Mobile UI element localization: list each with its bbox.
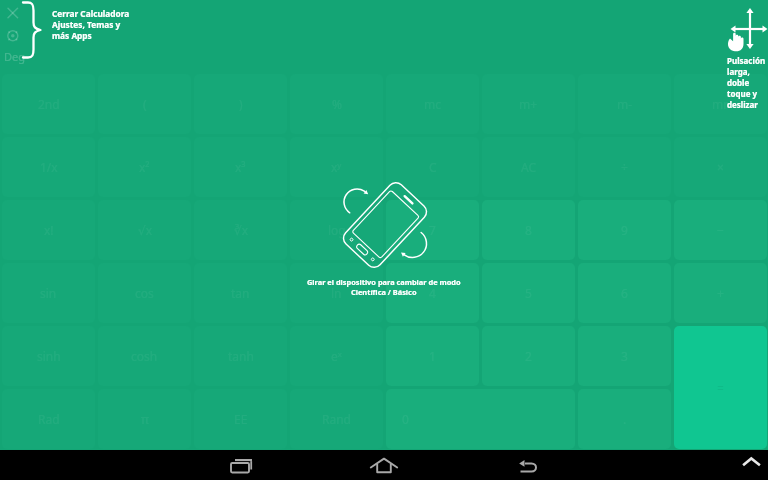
staticText: ( (143, 96, 147, 112)
staticText: ln (331, 285, 342, 301)
staticText: √x (138, 222, 152, 238)
staticText: xʸ (331, 159, 342, 175)
staticText: Pulsación (727, 55, 766, 66)
button[interactable]: C (386, 137, 479, 197)
staticText: log (328, 222, 346, 238)
staticText: deslizar (727, 99, 758, 110)
button[interactable]: Home (356, 450, 412, 480)
staticText: mr (712, 96, 729, 112)
staticText: Deg (4, 49, 25, 64)
staticText: eˣ (331, 348, 342, 364)
staticText: larga, (727, 66, 750, 77)
staticText: × (717, 159, 724, 175)
staticText: 1/x (40, 159, 58, 175)
staticText: ∛x (234, 222, 248, 238)
staticText: sinh (37, 348, 61, 364)
staticText: ) (239, 96, 243, 112)
staticText: Rad (38, 411, 60, 427)
staticText: Rand (322, 411, 351, 427)
staticText: x! (44, 222, 54, 238)
staticText: EE (234, 411, 248, 427)
button[interactable]: mr (674, 74, 767, 134)
staticText: m+ (519, 96, 538, 112)
staticText: 5 (525, 285, 532, 301)
staticText: AC (521, 159, 537, 175)
button[interactable]: Recents (212, 450, 268, 480)
staticText: 8 (525, 222, 532, 238)
staticText: 7 (429, 222, 436, 238)
button[interactable]: Expand navigation bar (738, 450, 768, 480)
staticText: x² (139, 159, 150, 175)
button[interactable]: ln (290, 263, 383, 323)
staticText: mc (424, 96, 441, 112)
staticText: 3 (621, 348, 628, 364)
staticText: sin (40, 285, 57, 301)
staticText: Científica / Básico (351, 287, 417, 297)
staticText: más Apps (52, 30, 92, 41)
staticText: cosh (131, 348, 158, 364)
staticText: Ajustes, Temas y (52, 19, 121, 30)
staticText: 2 (525, 348, 532, 364)
staticText: % (332, 96, 342, 112)
staticText: doble (727, 77, 750, 88)
button[interactable]: 7 (386, 200, 479, 260)
staticText: 6 (621, 285, 628, 301)
button[interactable]: xʸ (290, 137, 383, 197)
staticText: tanh (228, 348, 254, 364)
staticText: Girar el dispositivo para cambiar de mod… (307, 277, 461, 287)
staticText: tan (231, 285, 250, 301)
staticText: π (141, 411, 149, 427)
button[interactable]: log (290, 200, 383, 260)
staticText: m- (617, 96, 633, 112)
button[interactable]: Back (500, 450, 556, 480)
button[interactable]: 4 (386, 263, 479, 323)
staticText: Cerrar Calculadora (52, 8, 130, 19)
staticText: + (717, 285, 724, 301)
staticText: x³ (235, 159, 246, 175)
staticText: 0 (402, 411, 409, 427)
staticText: C (429, 159, 437, 175)
